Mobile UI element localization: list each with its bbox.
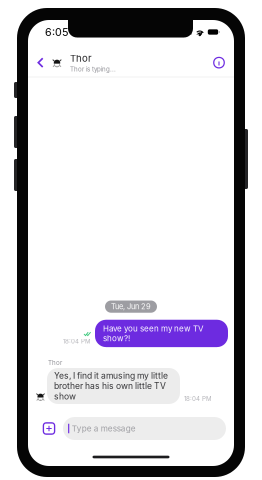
staticText: Thor [48,359,62,366]
staticText: Have you seen my new TV show?! [103,324,204,343]
button[interactable]: Type a message [63,417,226,440]
button[interactable]: Back [32,49,49,77]
button[interactable]: Conversation info [209,49,229,77]
staticText: 18:04 PM [63,338,91,345]
staticText: Tue, Jun 29 [111,302,151,311]
staticText: Thor [70,52,92,64]
button[interactable]: Add attachment [41,417,57,440]
staticText: Type a message [72,424,136,433]
staticText: Thor is typing... [70,65,116,73]
staticText: 18:04 PM [184,395,212,402]
staticText: Yes, I find it amusing my little brother… [54,370,168,401]
staticText: 6:05 [45,25,68,38]
